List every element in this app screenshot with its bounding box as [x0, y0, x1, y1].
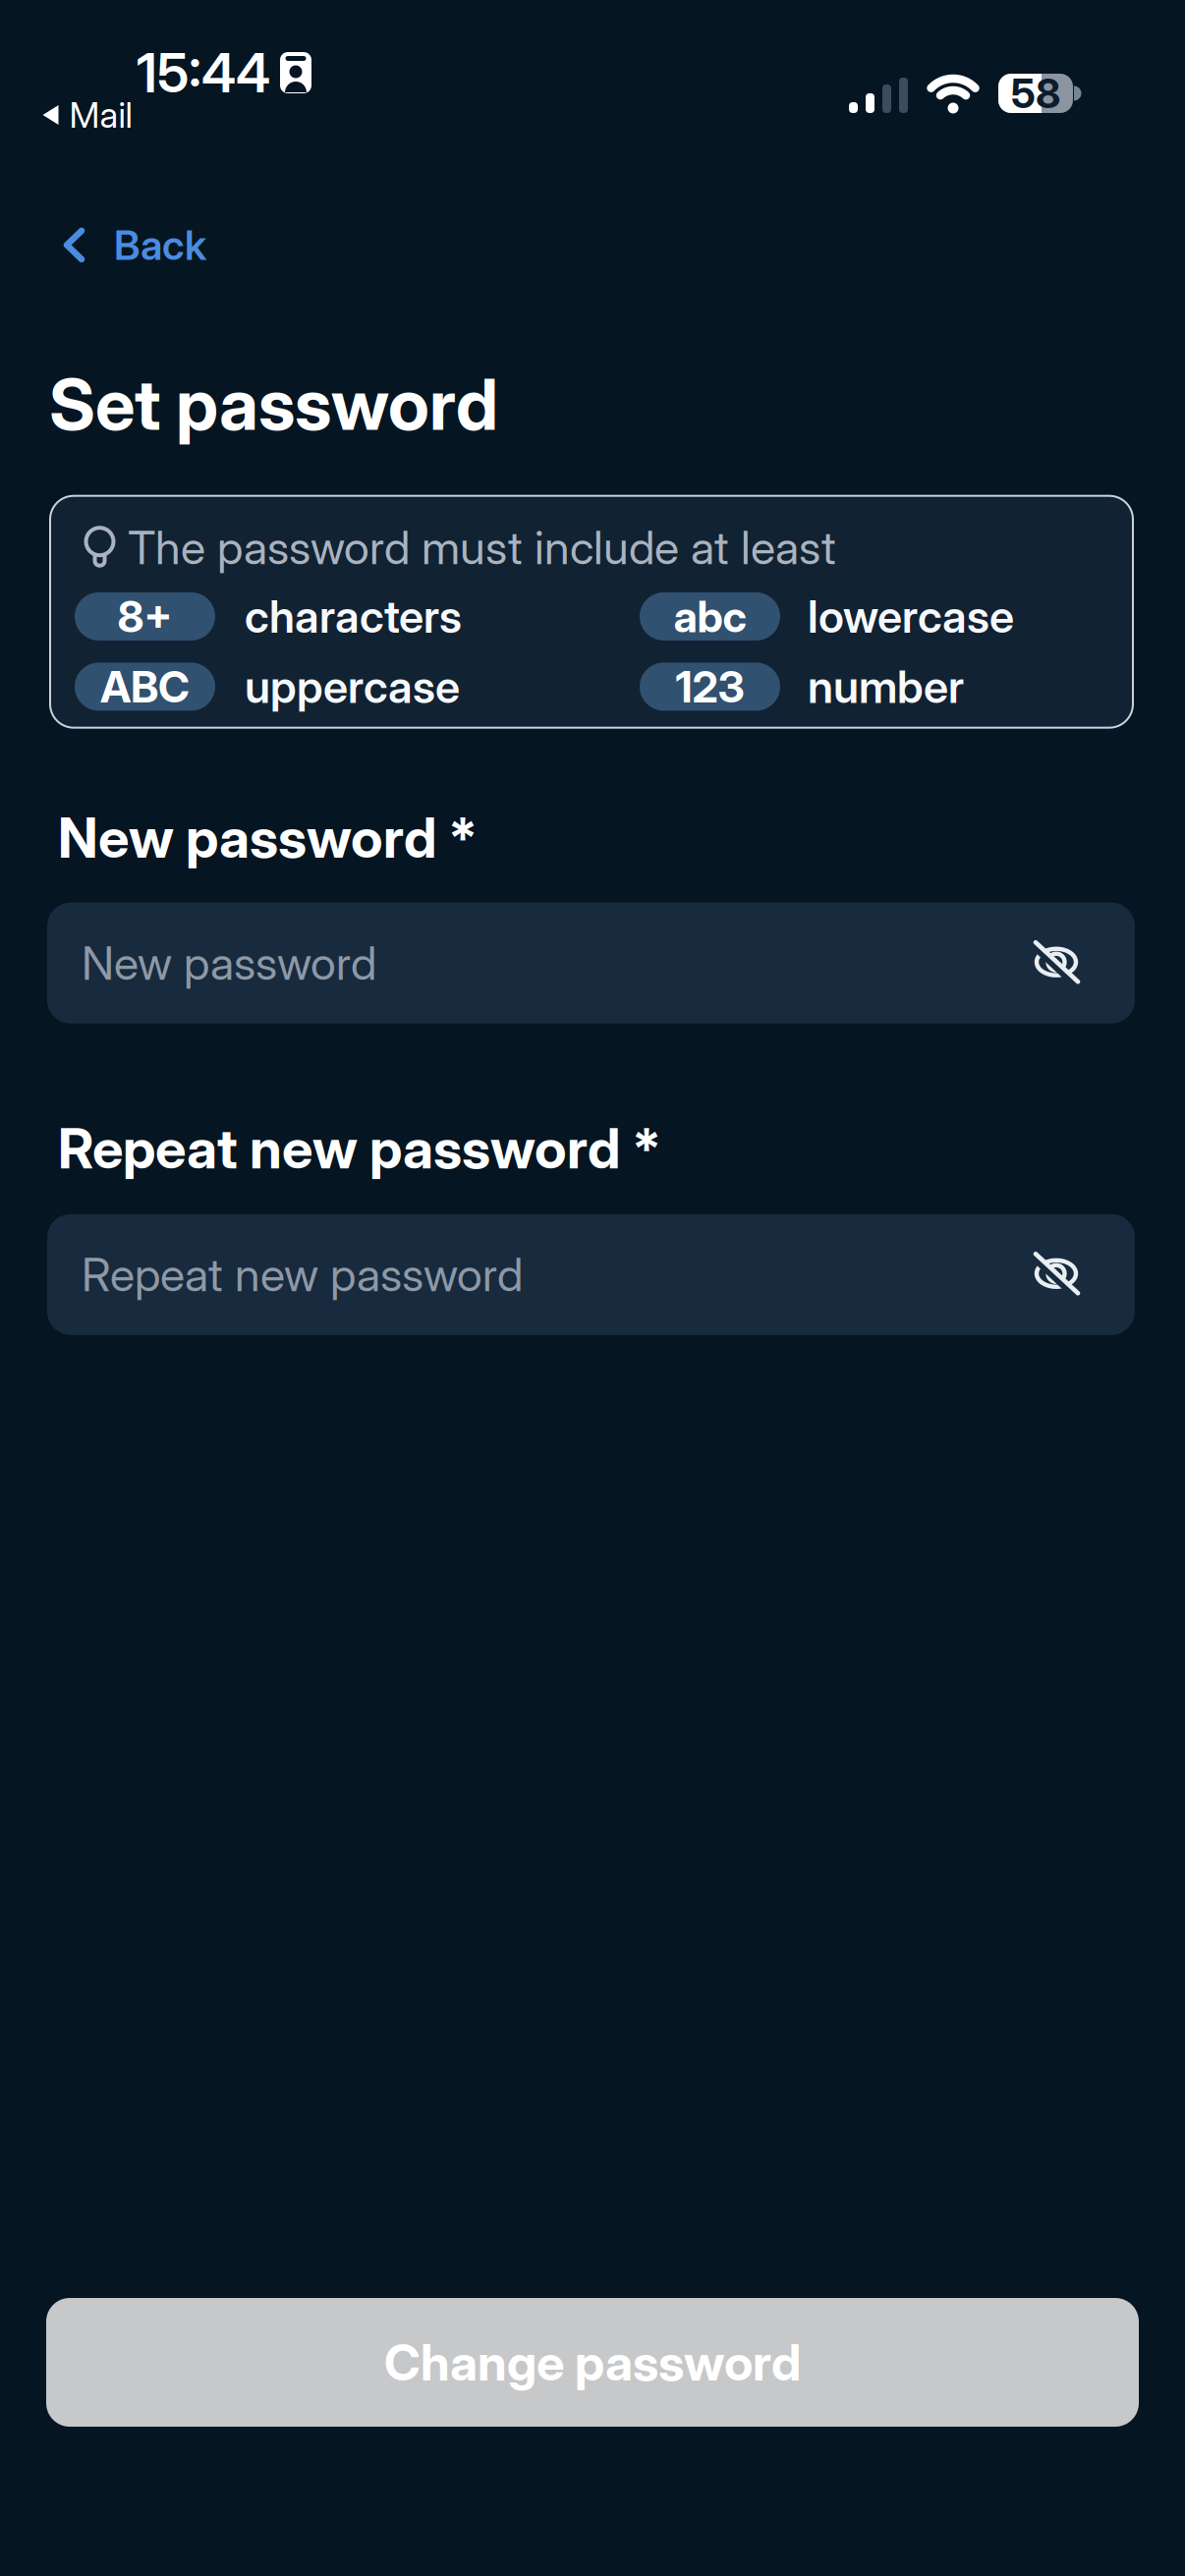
staticText: Change password [384, 2333, 801, 2392]
button[interactable] [1033, 1253, 1082, 1296]
staticText: 123 [676, 661, 744, 712]
button[interactable]: Repeat new password [47, 1214, 1135, 1335]
staticText: 15:44 [137, 41, 270, 104]
staticText: characters [245, 590, 462, 643]
staticText: 8+ [117, 591, 172, 642]
button[interactable]: New password [47, 903, 1135, 1023]
button[interactable] [1033, 941, 1082, 985]
staticText: Set password [49, 362, 498, 446]
staticText: Back [114, 221, 206, 269]
staticText: Repeat new password [82, 1248, 523, 1302]
staticText: Mail [69, 94, 132, 136]
staticText: abc [674, 591, 746, 642]
staticText: New password * [58, 805, 478, 870]
button[interactable]: Back [0, 221, 206, 269]
button[interactable]: Change password [46, 2298, 1139, 2427]
staticText: 58 [1011, 69, 1060, 117]
staticText: uppercase [245, 660, 460, 713]
staticText: Repeat new password * [58, 1116, 661, 1181]
staticText: lowercase [808, 590, 1014, 643]
staticText: number [808, 660, 964, 713]
staticText: ABC [100, 661, 190, 712]
button[interactable]: Mail [41, 94, 132, 136]
staticText: The password must include at least [128, 520, 836, 575]
staticText: New password [82, 936, 376, 990]
